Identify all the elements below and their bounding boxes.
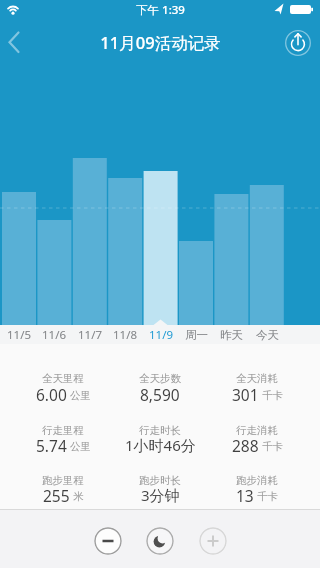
staticText: 公里: [70, 389, 91, 402]
button[interactable]: [94, 527, 122, 555]
staticText: 6.00: [36, 384, 67, 405]
staticText: 301: [232, 384, 259, 405]
button[interactable]: 周一: [178, 325, 214, 344]
staticText: 下午 1:39: [136, 2, 185, 18]
staticText: 全天步数: [139, 372, 181, 385]
button[interactable]: 今天: [249, 325, 285, 344]
button[interactable]: [199, 527, 227, 555]
button[interactable]: 昨天: [213, 325, 249, 344]
staticText: 千卡: [257, 490, 278, 503]
staticText: 昨天: [220, 328, 243, 342]
staticText: 跑步消耗: [236, 474, 278, 487]
button[interactable]: 11/5: [1, 325, 37, 344]
button[interactable]: [0, 26, 32, 58]
staticText: 11/5: [7, 327, 32, 343]
button[interactable]: 11/8: [107, 325, 143, 344]
staticText: 13: [236, 485, 254, 506]
staticText: 跑步时长: [139, 474, 181, 487]
staticText: 11/8: [113, 327, 138, 343]
staticText: 全天里程: [42, 372, 84, 385]
staticText: 255: [43, 485, 70, 506]
button[interactable]: [146, 527, 174, 555]
staticText: 11月09活动记录: [100, 31, 221, 54]
staticText: 11/7: [78, 327, 103, 343]
staticText: 11/6: [42, 327, 67, 343]
staticText: 米: [73, 490, 84, 503]
staticText: 288: [232, 435, 259, 456]
button[interactable]: [284, 29, 312, 57]
staticText: 公里: [70, 440, 91, 453]
staticText: 1小时46分: [125, 435, 196, 455]
staticText: 周一: [185, 328, 208, 342]
staticText: 全天消耗: [236, 372, 278, 385]
staticText: 行走里程: [42, 424, 84, 437]
staticText: 3分钟: [141, 485, 180, 505]
button[interactable]: 11/7: [72, 325, 108, 344]
staticText: 5.74: [36, 435, 67, 456]
staticText: 跑步里程: [42, 474, 84, 487]
staticText: 今天: [256, 328, 279, 342]
staticText: 千卡: [262, 440, 283, 453]
staticText: 千卡: [262, 389, 283, 402]
button[interactable]: 11/6: [36, 325, 72, 344]
staticText: 8,590: [140, 384, 180, 405]
staticText: 行走时长: [139, 424, 181, 437]
staticText: 11/9: [149, 327, 174, 343]
staticText: 行走消耗: [236, 424, 278, 437]
button[interactable]: 11/9: [143, 325, 179, 344]
